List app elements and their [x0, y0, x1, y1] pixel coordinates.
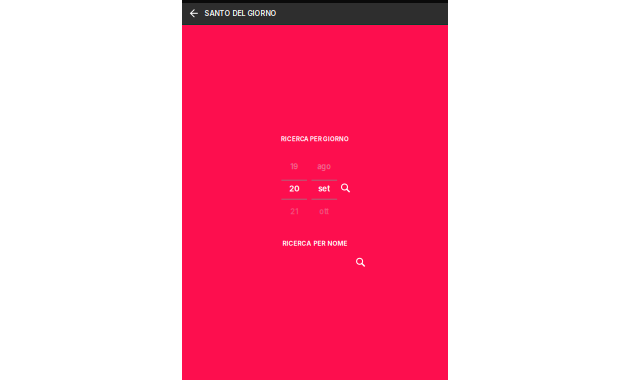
staticText: 21: [290, 207, 298, 216]
staticText: 19: [290, 162, 298, 171]
button[interactable]: 19: [281, 157, 307, 223]
button[interactable]: Cerca per giorno: [341, 183, 355, 197]
button[interactable]: Cerca per nome: [356, 258, 370, 272]
staticText: set: [318, 184, 330, 193]
staticText: SANTO DEL GIORNO: [204, 9, 276, 18]
staticText: 20: [289, 184, 299, 193]
button[interactable]: Indietro: [190, 5, 205, 21]
staticText: RICERCA PER NOME: [282, 240, 347, 247]
staticText: ago: [317, 162, 331, 171]
staticText: ott: [319, 207, 329, 216]
staticText: RICERCA PER GIORNO: [281, 135, 349, 143]
button[interactable]: ago: [311, 157, 337, 223]
